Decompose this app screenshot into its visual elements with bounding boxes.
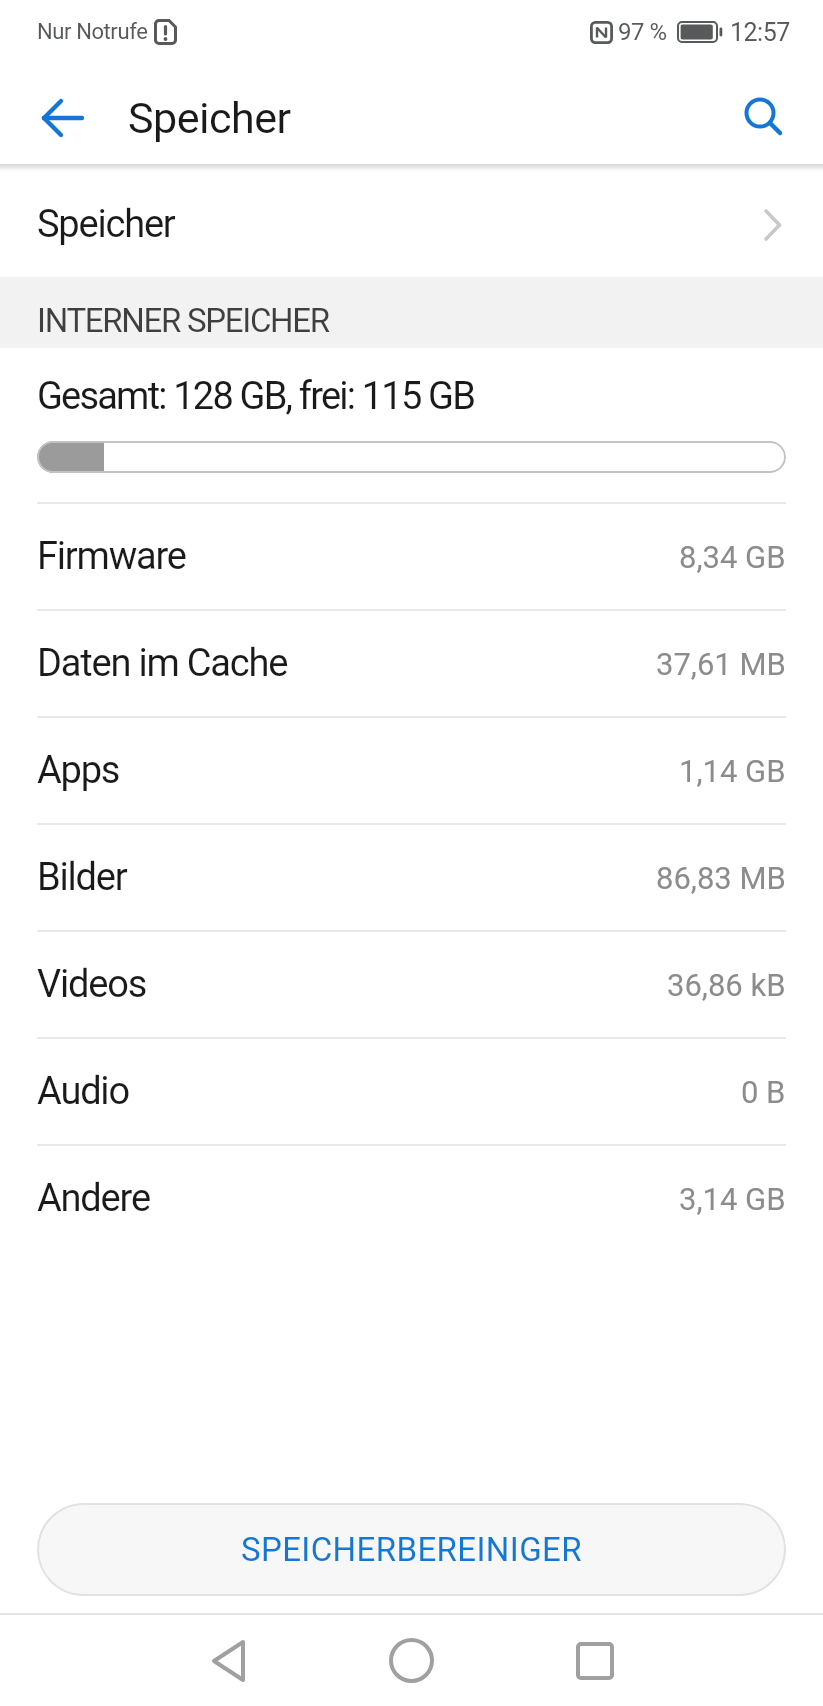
staticText: SPEICHERBEREINIGER [241,1530,582,1569]
button[interactable]: SPEICHERBEREINIGER [37,1503,786,1596]
button[interactable] [741,95,787,141]
button[interactable]: Videos [0,932,823,1037]
staticText: Andere [37,1176,150,1221]
staticText: Speicher [128,93,291,143]
staticText: Speicher [37,202,175,247]
staticText: 86,83 MB [656,860,786,896]
button[interactable]: Audio [0,1039,823,1144]
staticText: 8,34 GB [679,539,786,575]
staticText: Gesamt: 128 GB, frei: 115 GB [37,374,475,419]
button[interactable] [137,1615,320,1706]
staticText: 0 B [741,1074,786,1110]
staticText: 3,14 GB [679,1181,786,1217]
button[interactable]: Apps [0,718,823,823]
staticText: Bilder [37,855,127,900]
button[interactable]: Bilder [0,825,823,930]
button[interactable] [40,95,86,141]
button[interactable] [503,1615,686,1706]
staticText: Apps [37,748,120,793]
button[interactable]: Firmware [0,504,823,609]
button[interactable]: Andere [0,1146,823,1251]
button[interactable] [320,1615,503,1706]
staticText: 1,14 GB [679,753,786,789]
staticText: Firmware [37,534,186,579]
staticText: Daten im Cache [37,641,288,686]
staticText: 97 % [618,18,667,46]
staticText: INTERNER SPEICHER [37,301,329,340]
staticText: 12:57 [730,18,790,47]
button[interactable]: Speicher [0,172,823,277]
staticText: Nur Notrufe [37,19,148,45]
staticText: Audio [37,1069,129,1114]
staticText: Videos [37,962,147,1007]
staticText: 37,61 MB [656,646,786,682]
staticText: 36,86 kB [667,967,786,1003]
button[interactable]: Daten im Cache [0,611,823,716]
